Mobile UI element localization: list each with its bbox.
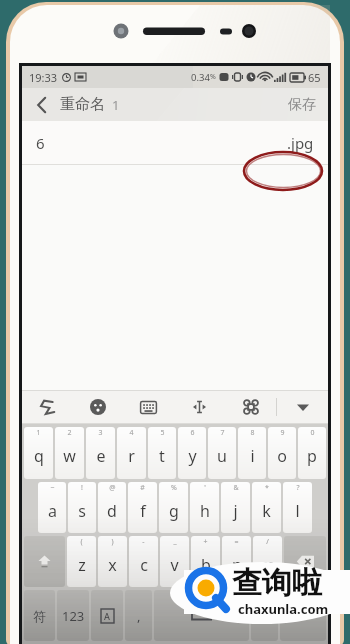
staticText: 65 [308,70,321,85]
staticText: h [200,500,210,522]
staticText: ' [204,483,206,493]
staticText: 符 [33,608,46,624]
staticText: p [307,445,317,467]
staticText: j [233,500,238,522]
button[interactable]: 7 [208,427,236,479]
staticText: _ [173,537,177,547]
staticText: s [78,500,86,522]
button[interactable]: 符 [24,590,55,641]
button[interactable]: / [253,536,282,587]
staticText: x [108,554,117,576]
staticText: o [277,445,287,467]
staticText: ) [111,537,114,547]
staticText: y [188,445,197,467]
staticText: 7 [220,428,225,438]
staticText: u [217,445,227,467]
staticText: 。 [258,608,271,624]
button[interactable]: + [191,536,220,587]
staticText: 6 [190,428,195,438]
button[interactable]: 。 [251,590,278,641]
staticText: m [260,554,275,576]
staticText: f [140,500,146,522]
staticText: 4 [129,428,134,438]
staticText: 0 [310,428,315,438]
staticText: & [233,483,239,493]
button[interactable]: & [221,482,250,533]
staticText: 19:33 [29,70,58,85]
button[interactable]: Move cursor [174,390,225,424]
button[interactable]: 8 [238,427,266,479]
staticText: * [265,483,269,493]
staticText: A [104,610,110,622]
button[interactable]: Backspace [284,536,326,587]
staticText: % [210,72,216,82]
button[interactable]: Shift [24,536,65,587]
button[interactable]: - [129,536,158,587]
staticText: g [169,500,179,522]
button[interactable]: Input method [22,390,72,424]
button[interactable]: 保存 [276,88,328,121]
staticText: 123 [62,607,85,625]
button[interactable]: * [252,482,281,533]
staticText: k [262,500,271,522]
button[interactable]: Shortcuts [225,390,276,424]
staticText: 8 [250,428,255,438]
staticText: 6 [36,133,45,153]
button[interactable]: , [125,590,152,641]
button[interactable]: Space [154,590,249,641]
button[interactable]: @ [98,482,126,533]
staticText: @ [109,483,116,493]
button[interactable]: ) [98,536,127,587]
button[interactable]: Enter [280,590,326,641]
button[interactable]: _ [160,536,189,587]
staticText: 2 [67,428,72,438]
button[interactable]: Collapse keyboard [277,390,328,424]
button[interactable]: Keyboard layout [123,390,174,424]
button[interactable]: 5 [148,427,176,479]
button[interactable]: Switch language [91,590,123,641]
staticText: 1 [112,96,120,114]
staticText: chaxunla.com [238,600,329,618]
button[interactable]: 123 [57,590,89,641]
button[interactable]: ~ [38,482,66,533]
staticText: .jpg [287,133,314,153]
staticText: e [96,445,106,467]
button[interactable]: = [222,536,251,587]
button[interactable]: % [159,482,188,533]
button[interactable]: 1 [24,427,53,479]
staticText: # [140,483,145,493]
staticText: v [170,554,179,576]
button[interactable]: ? [283,482,312,533]
button[interactable]: 3 [86,427,115,479]
staticText: ~ [50,483,55,493]
staticText: z [78,554,86,576]
button[interactable]: ! [68,482,96,533]
button[interactable]: Emoji [72,390,123,424]
staticText: + [203,537,208,547]
staticText: / [266,537,269,547]
button[interactable]: 6 [22,121,328,164]
staticText: = [234,537,239,547]
button[interactable]: ( [67,536,96,587]
staticText: q [34,445,44,467]
staticText: r [128,445,135,467]
staticText: d [107,500,117,522]
staticText: ! [81,483,83,493]
staticText: w [63,445,76,467]
staticText: ( [80,537,83,547]
button[interactable]: # [128,482,157,533]
staticText: 重命名 [60,95,105,114]
staticText: 0.34 [191,71,210,84]
button[interactable]: 2 [55,427,84,479]
button[interactable]: 0 [298,427,326,479]
button[interactable]: 4 [117,427,146,479]
button[interactable]: 6 [178,427,206,479]
staticText: - [142,537,145,547]
button[interactable]: Back [22,88,60,121]
staticText: n [232,554,242,576]
button[interactable]: 9 [268,427,296,479]
staticText: l [295,500,300,522]
button[interactable]: ' [190,482,219,533]
staticText: 查询啦 [232,564,322,602]
staticText: c [140,554,148,576]
